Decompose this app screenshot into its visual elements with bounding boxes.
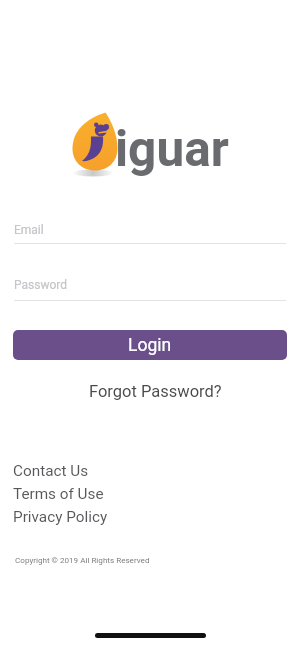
button[interactable]: Forgot Password? — [89, 382, 222, 401]
staticText: Privacy Policy — [13, 508, 108, 526]
staticText: Terms of Use — [13, 485, 104, 503]
button[interactable]: Contact Us — [13, 462, 89, 480]
button[interactable]: Password — [0, 271, 300, 299]
button[interactable]: Privacy Policy — [13, 508, 108, 526]
staticText: Login — [128, 335, 172, 356]
staticText: Contact Us — [13, 462, 89, 480]
button[interactable]: Login — [13, 330, 287, 360]
button[interactable]: Terms of Use — [13, 485, 104, 503]
staticText: iguar — [115, 120, 229, 178]
staticText: Copyright © 2019 All Rights Reserved — [15, 555, 150, 564]
staticText: Email — [14, 223, 44, 237]
staticText: Password — [14, 278, 68, 292]
button[interactable]: Email — [0, 216, 300, 244]
